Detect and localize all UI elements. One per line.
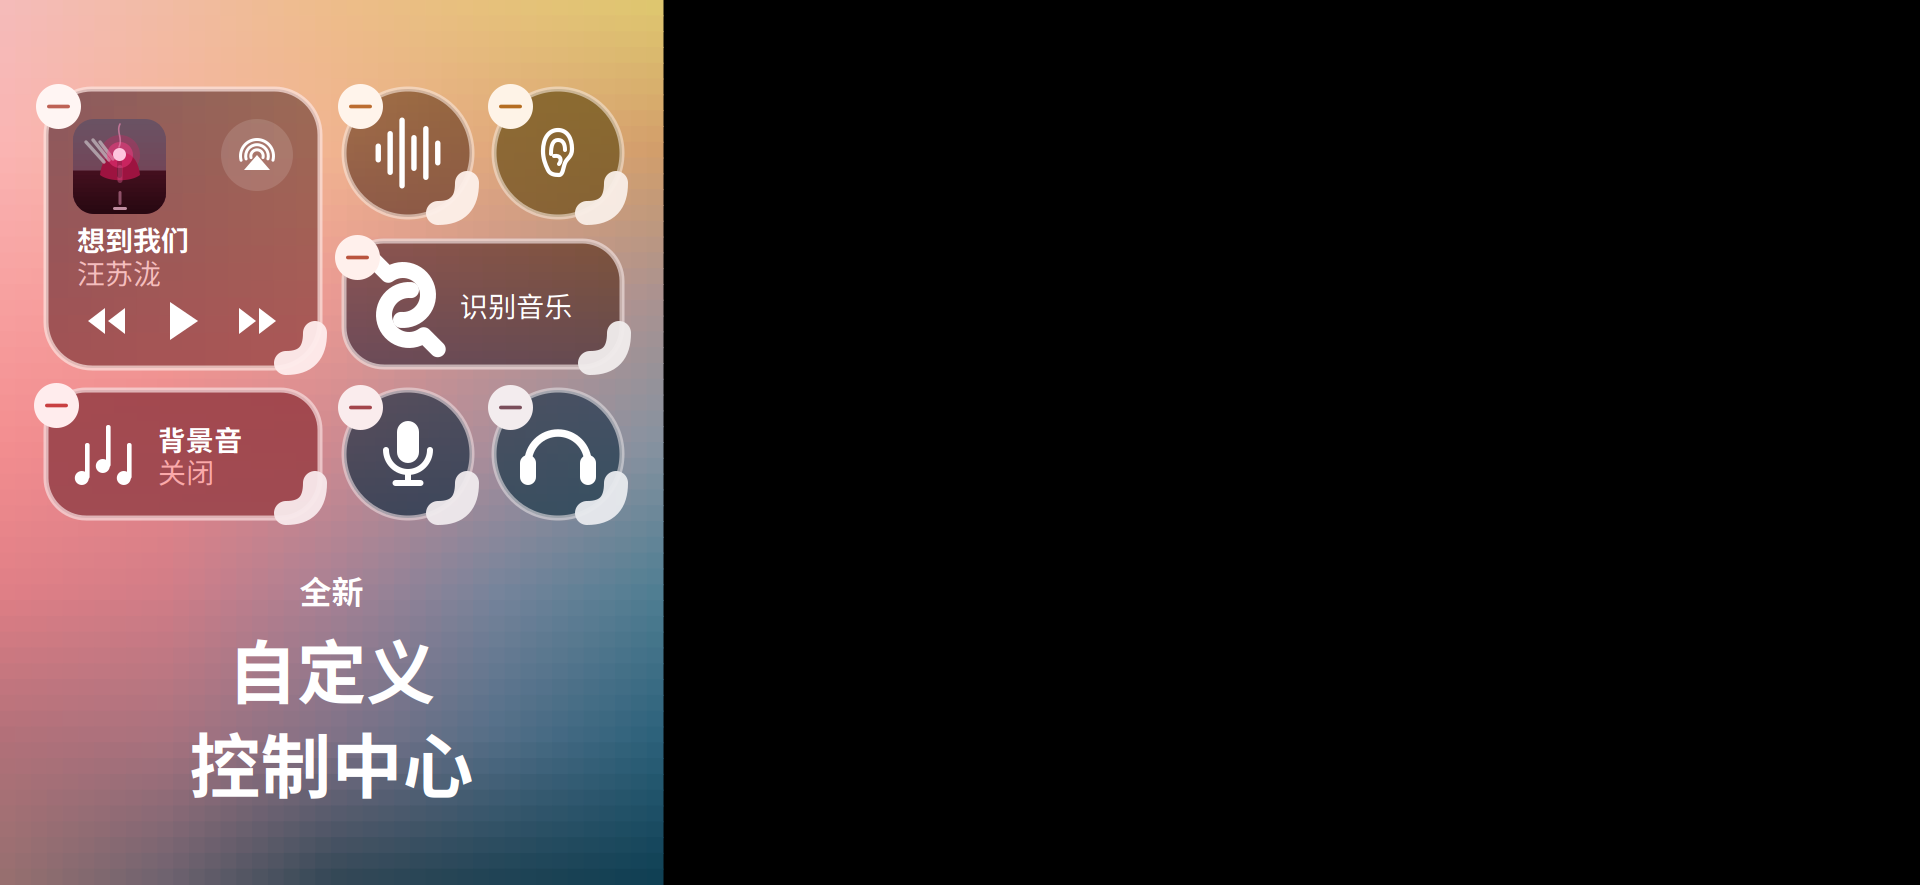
button[interactable]: 实时收听 (344, 89, 472, 217)
button[interactable]: 麦克风 (344, 390, 472, 518)
staticText: 汪苏泷 (77, 252, 161, 292)
button[interactable]: 移除 (36, 84, 81, 129)
staticText: 想到我们 (77, 219, 189, 259)
staticText: 控制中心 (189, 711, 473, 813)
button[interactable]: 正在播放 想到我们 (46, 89, 320, 368)
staticText: 自定义 (228, 618, 435, 718)
button[interactable]: 移除 (338, 84, 383, 129)
button[interactable]: 移除 (488, 84, 533, 129)
button[interactable]: 听力 (494, 89, 622, 217)
button[interactable]: 识别音乐 (344, 241, 622, 367)
button[interactable]: 移除 (338, 385, 383, 430)
staticText: 背景音 (158, 419, 242, 459)
staticText: 全新 (299, 567, 363, 613)
button[interactable]: 背景音 关闭 (46, 390, 320, 518)
button[interactable]: 移除 (488, 385, 533, 430)
button[interactable]: 移除 (34, 383, 79, 428)
button[interactable]: 移除 (335, 235, 380, 280)
staticText: 关闭 (158, 451, 214, 491)
button[interactable]: 耳机 (494, 390, 622, 518)
staticText: 识别音乐 (460, 285, 572, 325)
